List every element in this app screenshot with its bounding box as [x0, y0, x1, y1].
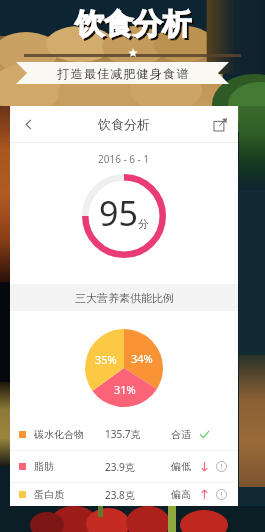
button[interactable]: Back: [10, 106, 46, 142]
staticText: 打造最佳减肥健身食谱: [57, 66, 189, 81]
staticText: 三大营养素供能比例: [75, 291, 174, 305]
staticText: 35%: [95, 352, 117, 367]
staticText: 饮食分析: [77, 8, 193, 45]
staticText: 95: [99, 190, 138, 236]
staticText: 分: [138, 217, 149, 231]
staticText: 34%: [131, 351, 153, 366]
button[interactable]: 碳水化合物: [10, 418, 238, 450]
staticText: 饮食分析: [75, 6, 191, 43]
staticText: 蛋白质: [34, 488, 105, 501]
staticText: 偏高: [171, 488, 191, 501]
button[interactable]: Share: [202, 106, 238, 142]
staticText: 135.7克: [105, 427, 171, 441]
staticText: 2016 - 6 - 1: [98, 152, 150, 166]
button[interactable]: 脂肪: [10, 451, 238, 482]
staticText: 偏低: [171, 460, 191, 473]
staticText: 脂肪: [34, 460, 105, 473]
staticText: 碳水化合物: [34, 428, 105, 441]
staticText: 31%: [114, 382, 136, 397]
staticText: 饮食分析: [98, 116, 150, 132]
staticText: 合适: [171, 428, 191, 441]
staticText: 23.8克: [105, 488, 171, 502]
button[interactable]: 蛋白质: [10, 483, 238, 506]
staticText: 23.9克: [105, 460, 171, 474]
